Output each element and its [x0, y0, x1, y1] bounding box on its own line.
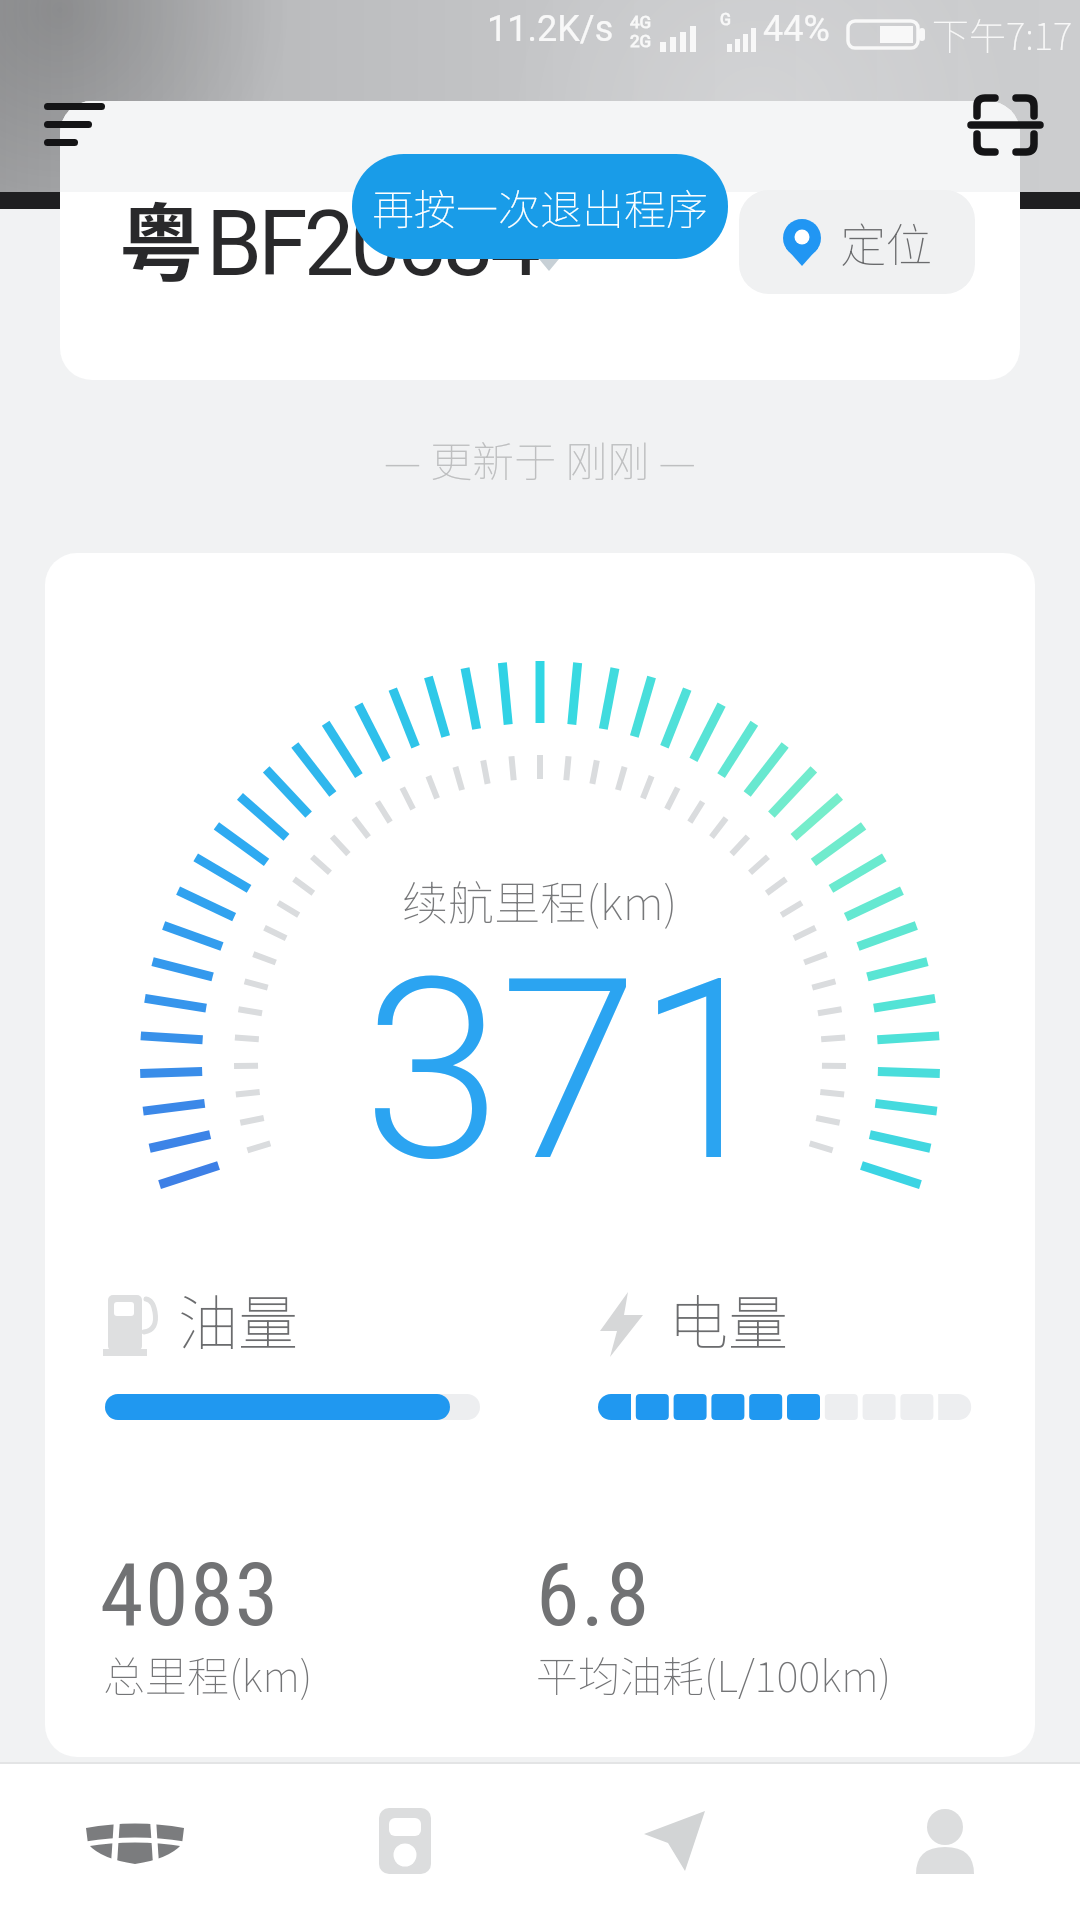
staticText: 2G	[630, 31, 652, 51]
staticText: 11.2K/s	[487, 8, 614, 50]
button[interactable]	[270, 1762, 540, 1920]
button[interactable]	[540, 1762, 810, 1920]
staticText: 电量	[668, 1275, 788, 1362]
staticText: 续航里程(km)	[402, 867, 678, 934]
staticText: 4083	[100, 1543, 280, 1646]
staticText: 44%	[763, 8, 830, 50]
staticText: — 更新于 刚刚 —	[384, 428, 696, 489]
staticText: BF20034	[206, 192, 537, 297]
button[interactable]	[960, 85, 1052, 165]
staticText: 平均油耗(L/100km)	[536, 1643, 892, 1704]
staticText: 6.8	[536, 1543, 651, 1646]
staticText: 371	[363, 925, 774, 1218]
staticText: 再按一次退出程序	[372, 176, 709, 237]
button[interactable]: 粤	[60, 101, 1020, 380]
staticText: G	[720, 10, 731, 29]
staticText: 油量	[178, 1275, 298, 1362]
button[interactable]: 定位	[739, 190, 975, 294]
staticText: 粤	[119, 177, 204, 299]
staticText: 总里程(km)	[103, 1643, 313, 1704]
staticText: 下午7:17	[932, 7, 1073, 61]
button[interactable]	[0, 1762, 270, 1920]
button[interactable]	[810, 1762, 1080, 1920]
staticText: 4G	[630, 12, 652, 32]
button[interactable]	[34, 90, 120, 160]
staticText: 定位	[840, 209, 932, 276]
